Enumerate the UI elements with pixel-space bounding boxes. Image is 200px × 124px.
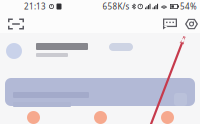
button[interactable]: Tab one	[27, 111, 40, 124]
staticText: 21:13	[24, 1, 46, 12]
button[interactable]: Settings	[181, 14, 200, 34]
button[interactable]	[0, 38, 200, 65]
button[interactable]: Scan	[4, 14, 28, 33]
button[interactable]	[5, 78, 195, 106]
button[interactable]: Tab two	[94, 111, 107, 124]
button[interactable]: Messages	[159, 14, 181, 33]
button[interactable]: Tab three	[161, 111, 174, 124]
staticText: 658K/s	[102, 1, 129, 12]
staticText: 54%	[180, 1, 197, 12]
